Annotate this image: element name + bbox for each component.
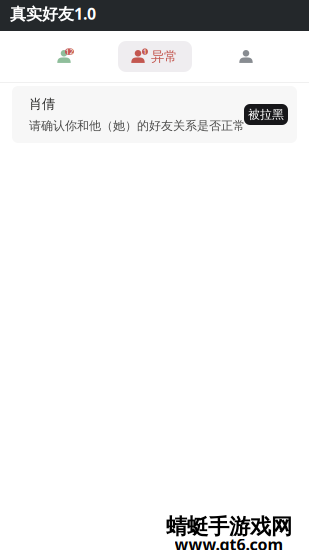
button[interactable]: 我的 bbox=[217, 41, 275, 72]
staticText: 被拉黑 bbox=[248, 107, 284, 122]
staticText: www.qt6.com bbox=[175, 535, 284, 550]
button[interactable]: 异常 bbox=[118, 41, 192, 72]
button[interactable]: 好友 bbox=[35, 41, 93, 72]
staticText: 异常 bbox=[151, 48, 177, 65]
staticText: 蜻蜓手游戏网 bbox=[165, 512, 291, 539]
staticText: www.qt6.com bbox=[173, 534, 282, 550]
staticText: 蜻蜓手游戏网 bbox=[166, 513, 292, 540]
staticText: 蜻蜓手游戏网 bbox=[167, 515, 293, 541]
staticText: 蜻蜓手游戏网 bbox=[164, 513, 290, 540]
staticText: www.qt6.com bbox=[174, 532, 283, 550]
staticText: 1 bbox=[143, 47, 147, 56]
staticText: 蜻蜓手游戏网 bbox=[167, 513, 293, 540]
staticText: www.qt6.com bbox=[176, 534, 285, 550]
staticText: 请确认你和他（她）的好友关系是否正常 bbox=[29, 118, 245, 133]
staticText: 12 bbox=[65, 47, 73, 56]
staticText: 肖倩 bbox=[29, 96, 55, 112]
staticText: 蜻蜓手游戏网 bbox=[167, 512, 293, 539]
staticText: 蜻蜓手游戏网 bbox=[166, 512, 292, 538]
staticText: 蜻蜓手游戏网 bbox=[166, 515, 292, 541]
staticText: www.qt6.com bbox=[174, 534, 283, 550]
staticText: 真实好友1.0 bbox=[10, 3, 96, 24]
staticText: www.qt6.com bbox=[175, 533, 284, 550]
staticText: www.qt6.com bbox=[174, 535, 283, 550]
staticText: www.qt6.com bbox=[174, 535, 283, 550]
button[interactable]: 被拉黑 bbox=[244, 104, 288, 125]
staticText: 蜻蜓手游戏网 bbox=[165, 515, 291, 541]
staticText: www.qt6.com bbox=[174, 533, 283, 550]
